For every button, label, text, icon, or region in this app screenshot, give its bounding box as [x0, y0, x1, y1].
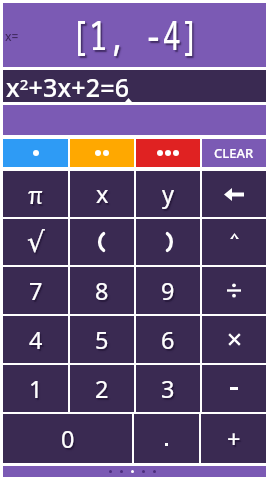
- button[interactable]: 8: [70, 267, 134, 314]
- staticText: 4: [29, 324, 43, 356]
- staticText: 0: [61, 423, 75, 455]
- button[interactable]: Backspace: [202, 171, 266, 217]
- button[interactable]: x: [70, 171, 134, 217]
- button[interactable]: 3: [136, 365, 200, 412]
- button[interactable]: 1 solutions: [3, 139, 68, 167]
- button[interactable]: Decimal point: [134, 414, 199, 463]
- button[interactable]: 0: [3, 414, 132, 463]
- staticText: 8: [95, 275, 109, 307]
- button[interactable]: Divide: [202, 267, 266, 314]
- button[interactable]: Square root: [3, 219, 68, 265]
- staticText: CLEAR: [214, 144, 254, 162]
- button[interactable]: +: [201, 414, 266, 463]
- button[interactable]: Close parenthesis: [136, 219, 200, 265]
- button[interactable]: Pi: [3, 171, 68, 217]
- button[interactable]: CLEAR: [202, 139, 266, 167]
- staticText: 7: [29, 275, 43, 307]
- button[interactable]: Multiply: [202, 316, 266, 363]
- button[interactable]: 9: [136, 267, 200, 314]
- button[interactable]: 7: [3, 267, 68, 314]
- staticText: 1: [29, 373, 43, 405]
- staticText: [1, -4]: [71, 7, 199, 61]
- button[interactable]: 1: [3, 365, 68, 412]
- button[interactable]: 2: [70, 365, 134, 412]
- staticText: √: [27, 226, 45, 259]
- button[interactable]: 3 solutions: [136, 139, 200, 167]
- staticText: 6: [161, 324, 175, 356]
- staticText: y: [162, 178, 174, 210]
- staticText: 9: [161, 275, 175, 307]
- button[interactable]: Open parenthesis: [70, 219, 134, 265]
- button[interactable]: Minus: [202, 365, 266, 412]
- staticText: x=: [5, 28, 19, 44]
- staticText: x: [96, 178, 109, 210]
- staticText: 2: [95, 373, 109, 405]
- staticText: 5: [95, 324, 109, 356]
- button[interactable]: y: [136, 171, 200, 217]
- button[interactable]: 2 solutions: [70, 139, 134, 167]
- button[interactable]: 4: [3, 316, 68, 363]
- button[interactable]: 5: [70, 316, 134, 363]
- staticText: +: [227, 423, 241, 455]
- staticText: π: [28, 179, 43, 210]
- button[interactable]: Power: [202, 219, 266, 265]
- button[interactable]: 6: [136, 316, 200, 363]
- staticText: 3: [161, 373, 175, 405]
- staticText: x2+3x+2=6: [6, 70, 130, 101]
